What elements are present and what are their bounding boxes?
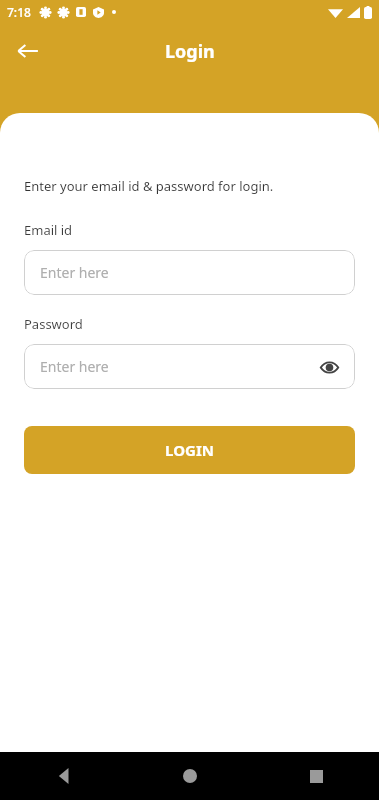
staticText: Enter here bbox=[40, 357, 109, 376]
button[interactable]: Enter here bbox=[24, 344, 355, 389]
button[interactable]: Back bbox=[10, 33, 46, 69]
button[interactable]: Home bbox=[127, 752, 253, 800]
button[interactable]: Show password bbox=[315, 353, 343, 381]
button[interactable]: Enter here bbox=[24, 250, 355, 295]
staticText: 7:18 bbox=[7, 4, 31, 20]
button[interactable]: LOGIN bbox=[24, 426, 355, 474]
staticText: LOGIN bbox=[165, 440, 214, 460]
button[interactable]: Recent apps bbox=[253, 752, 379, 800]
staticText: Enter your email id & password for login… bbox=[24, 177, 274, 195]
staticText: Enter here bbox=[40, 263, 109, 282]
staticText: Password bbox=[24, 315, 83, 333]
staticText: Email id bbox=[24, 221, 73, 239]
button[interactable]: Back bbox=[0, 752, 127, 800]
staticText: Login bbox=[165, 39, 215, 64]
